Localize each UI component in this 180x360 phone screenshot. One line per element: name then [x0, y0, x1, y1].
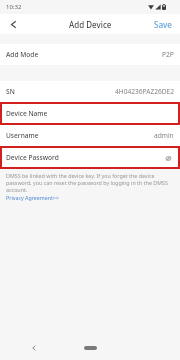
button[interactable]: Privacy Agreement>> [6, 194, 59, 201]
staticText: DMSS be linked with the device key. If y… [6, 172, 174, 193]
staticText: Add Mode [6, 50, 39, 59]
staticText: 4H04236PAZ26DE2 [115, 87, 174, 96]
button[interactable]: Add Mode [0, 44, 180, 65]
button[interactable]: Save [146, 19, 180, 30]
staticText: Save [154, 19, 172, 30]
button[interactable]: Home [84, 346, 97, 350]
staticText: Add Device [69, 19, 112, 30]
staticText: 10:32 [6, 3, 22, 11]
staticText: admin [154, 131, 174, 140]
staticText: Device Password [6, 153, 59, 162]
button[interactable]: Device Name [0, 102, 180, 125]
button[interactable]: Back [0, 14, 26, 34]
staticText: Username [6, 131, 39, 140]
button[interactable]: Show password [163, 153, 173, 163]
button[interactable]: SN [0, 81, 180, 102]
staticText: P2P [162, 50, 174, 59]
button[interactable]: Device Password [0, 146, 180, 169]
button[interactable]: Username [0, 125, 180, 146]
staticText: Device Name [6, 109, 48, 118]
staticText: SN [6, 87, 15, 96]
button[interactable]: Back [28, 342, 40, 354]
